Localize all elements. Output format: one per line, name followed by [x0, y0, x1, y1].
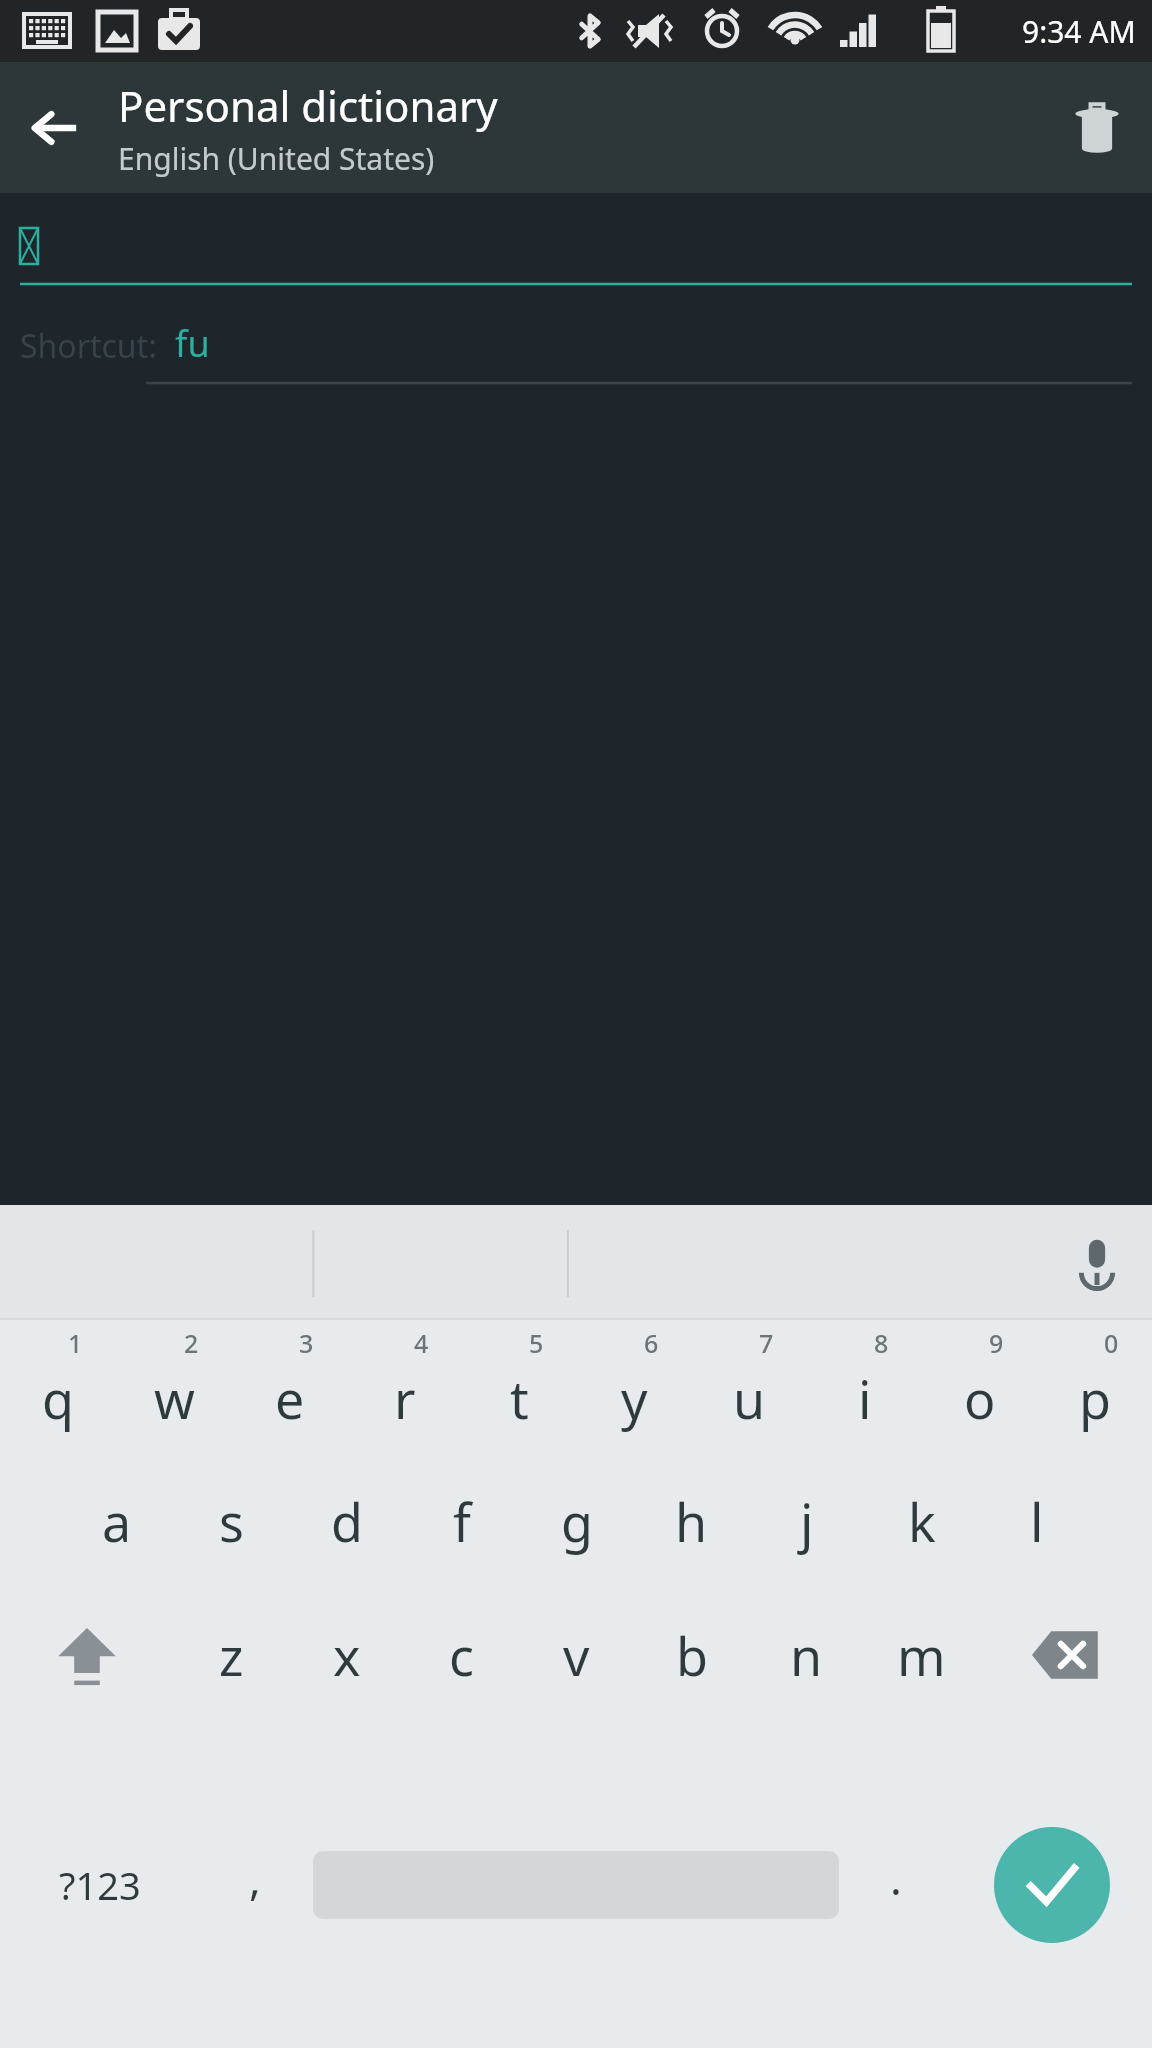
staticText: 8	[874, 1326, 889, 1360]
staticText: c	[449, 1620, 474, 1691]
button[interactable]: ,	[200, 1722, 310, 2048]
staticText: x	[333, 1620, 361, 1691]
button[interactable]: h	[634, 1454, 749, 1588]
button[interactable]: a	[59, 1454, 174, 1588]
staticText: b	[676, 1620, 708, 1691]
button[interactable]: 2	[116, 1320, 232, 1454]
staticText: 3	[299, 1326, 314, 1360]
staticText: 6	[644, 1326, 659, 1360]
staticText: y	[621, 1363, 648, 1434]
staticText: ,	[249, 1848, 261, 1908]
staticText: 2	[184, 1326, 199, 1360]
button[interactable]: v	[519, 1588, 634, 1722]
button[interactable]: d	[289, 1454, 404, 1588]
staticText: q	[42, 1363, 74, 1434]
button[interactable]: f	[404, 1454, 519, 1588]
staticText: English (United States)	[118, 138, 435, 179]
staticText: 1	[68, 1326, 83, 1360]
button[interactable]: Back	[0, 73, 110, 183]
staticText: j	[800, 1486, 814, 1557]
staticText: .	[890, 1848, 902, 1908]
staticText: s	[219, 1486, 244, 1557]
button[interactable]: .	[841, 1722, 951, 2048]
button[interactable]: 3	[232, 1320, 347, 1454]
staticText: m	[897, 1620, 946, 1691]
staticText: g	[561, 1486, 593, 1557]
button[interactable]: m	[864, 1588, 979, 1722]
staticText: Personal dictionary	[118, 77, 498, 134]
button[interactable]: 0	[1037, 1320, 1152, 1454]
staticText: n	[790, 1620, 823, 1691]
button[interactable]: k	[864, 1454, 979, 1588]
button[interactable]: 8	[807, 1320, 922, 1454]
button[interactable]: 7	[692, 1320, 807, 1454]
button[interactable]: Backspace	[979, 1588, 1152, 1722]
staticText: 7	[759, 1326, 774, 1360]
button[interactable]: s	[174, 1454, 289, 1588]
button[interactable]: 5	[462, 1320, 577, 1454]
staticText: h	[675, 1486, 708, 1557]
button[interactable]: j	[749, 1454, 864, 1588]
staticText: fu	[175, 319, 210, 368]
staticText: Shortcut:	[20, 324, 157, 368]
staticText: v	[563, 1620, 590, 1691]
staticText: i	[858, 1363, 872, 1434]
button[interactable]: g	[519, 1454, 634, 1588]
staticText: 9:34 AM	[1022, 11, 1136, 52]
staticText: u	[733, 1363, 766, 1434]
staticText: 9	[989, 1326, 1004, 1360]
staticText: ?123	[59, 1859, 141, 1911]
button[interactable]: Space	[310, 1722, 841, 2048]
button[interactable]: l	[979, 1454, 1094, 1588]
staticText: 0	[1104, 1326, 1119, 1360]
button[interactable]: 6	[577, 1320, 692, 1454]
button[interactable]: c	[404, 1588, 519, 1722]
button[interactable]: 9	[922, 1320, 1037, 1454]
staticText: d	[331, 1486, 363, 1557]
staticText: w	[154, 1363, 195, 1434]
button[interactable]: Shift	[0, 1588, 174, 1722]
staticText: z	[219, 1620, 244, 1691]
button[interactable]: Done	[951, 1722, 1152, 2048]
staticText: t	[510, 1363, 529, 1434]
staticText: e	[275, 1363, 305, 1434]
staticText: 5	[529, 1326, 544, 1360]
staticText: f	[453, 1486, 471, 1557]
button[interactable]: Delete	[1042, 73, 1152, 183]
staticText: r	[394, 1363, 416, 1434]
staticText: k	[908, 1486, 936, 1557]
button[interactable]: 4	[347, 1320, 462, 1454]
button[interactable]: z	[174, 1588, 289, 1722]
button[interactable]: 1	[0, 1320, 116, 1454]
staticText: o	[964, 1363, 996, 1434]
button[interactable]: x	[289, 1588, 404, 1722]
staticText: l	[1030, 1486, 1044, 1557]
button[interactable]: n	[749, 1588, 864, 1722]
staticText: 4	[414, 1326, 429, 1360]
button[interactable]: Voice input	[1042, 1205, 1152, 1320]
staticText: a	[102, 1486, 132, 1557]
staticText: p	[1079, 1363, 1111, 1434]
button[interactable]: ?123	[0, 1722, 200, 2048]
button[interactable]: b	[634, 1588, 749, 1722]
